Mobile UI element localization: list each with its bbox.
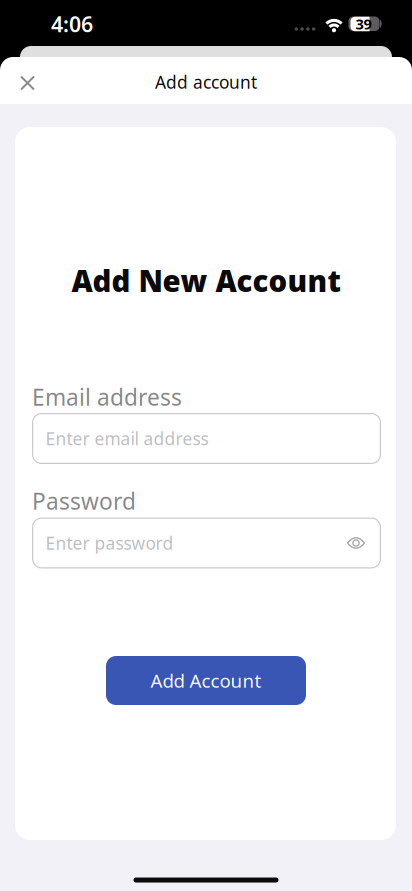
staticText: Add New Account (71, 261, 340, 300)
staticText: Email address (32, 382, 182, 412)
button[interactable]: Password (32, 517, 381, 568)
staticText: Add account (155, 70, 257, 93)
button[interactable]: Add Account (106, 656, 306, 705)
staticText: Enter password (45, 531, 173, 554)
button[interactable]: Close (10, 66, 44, 100)
button[interactable]: Email address (32, 413, 381, 464)
button[interactable]: Show password (338, 525, 374, 561)
staticText: Add Account (150, 668, 261, 693)
staticText: 39 (355, 14, 371, 33)
staticText: Password (32, 486, 136, 516)
staticText: Enter email address (45, 427, 208, 450)
staticText: 4:06 (51, 10, 93, 38)
